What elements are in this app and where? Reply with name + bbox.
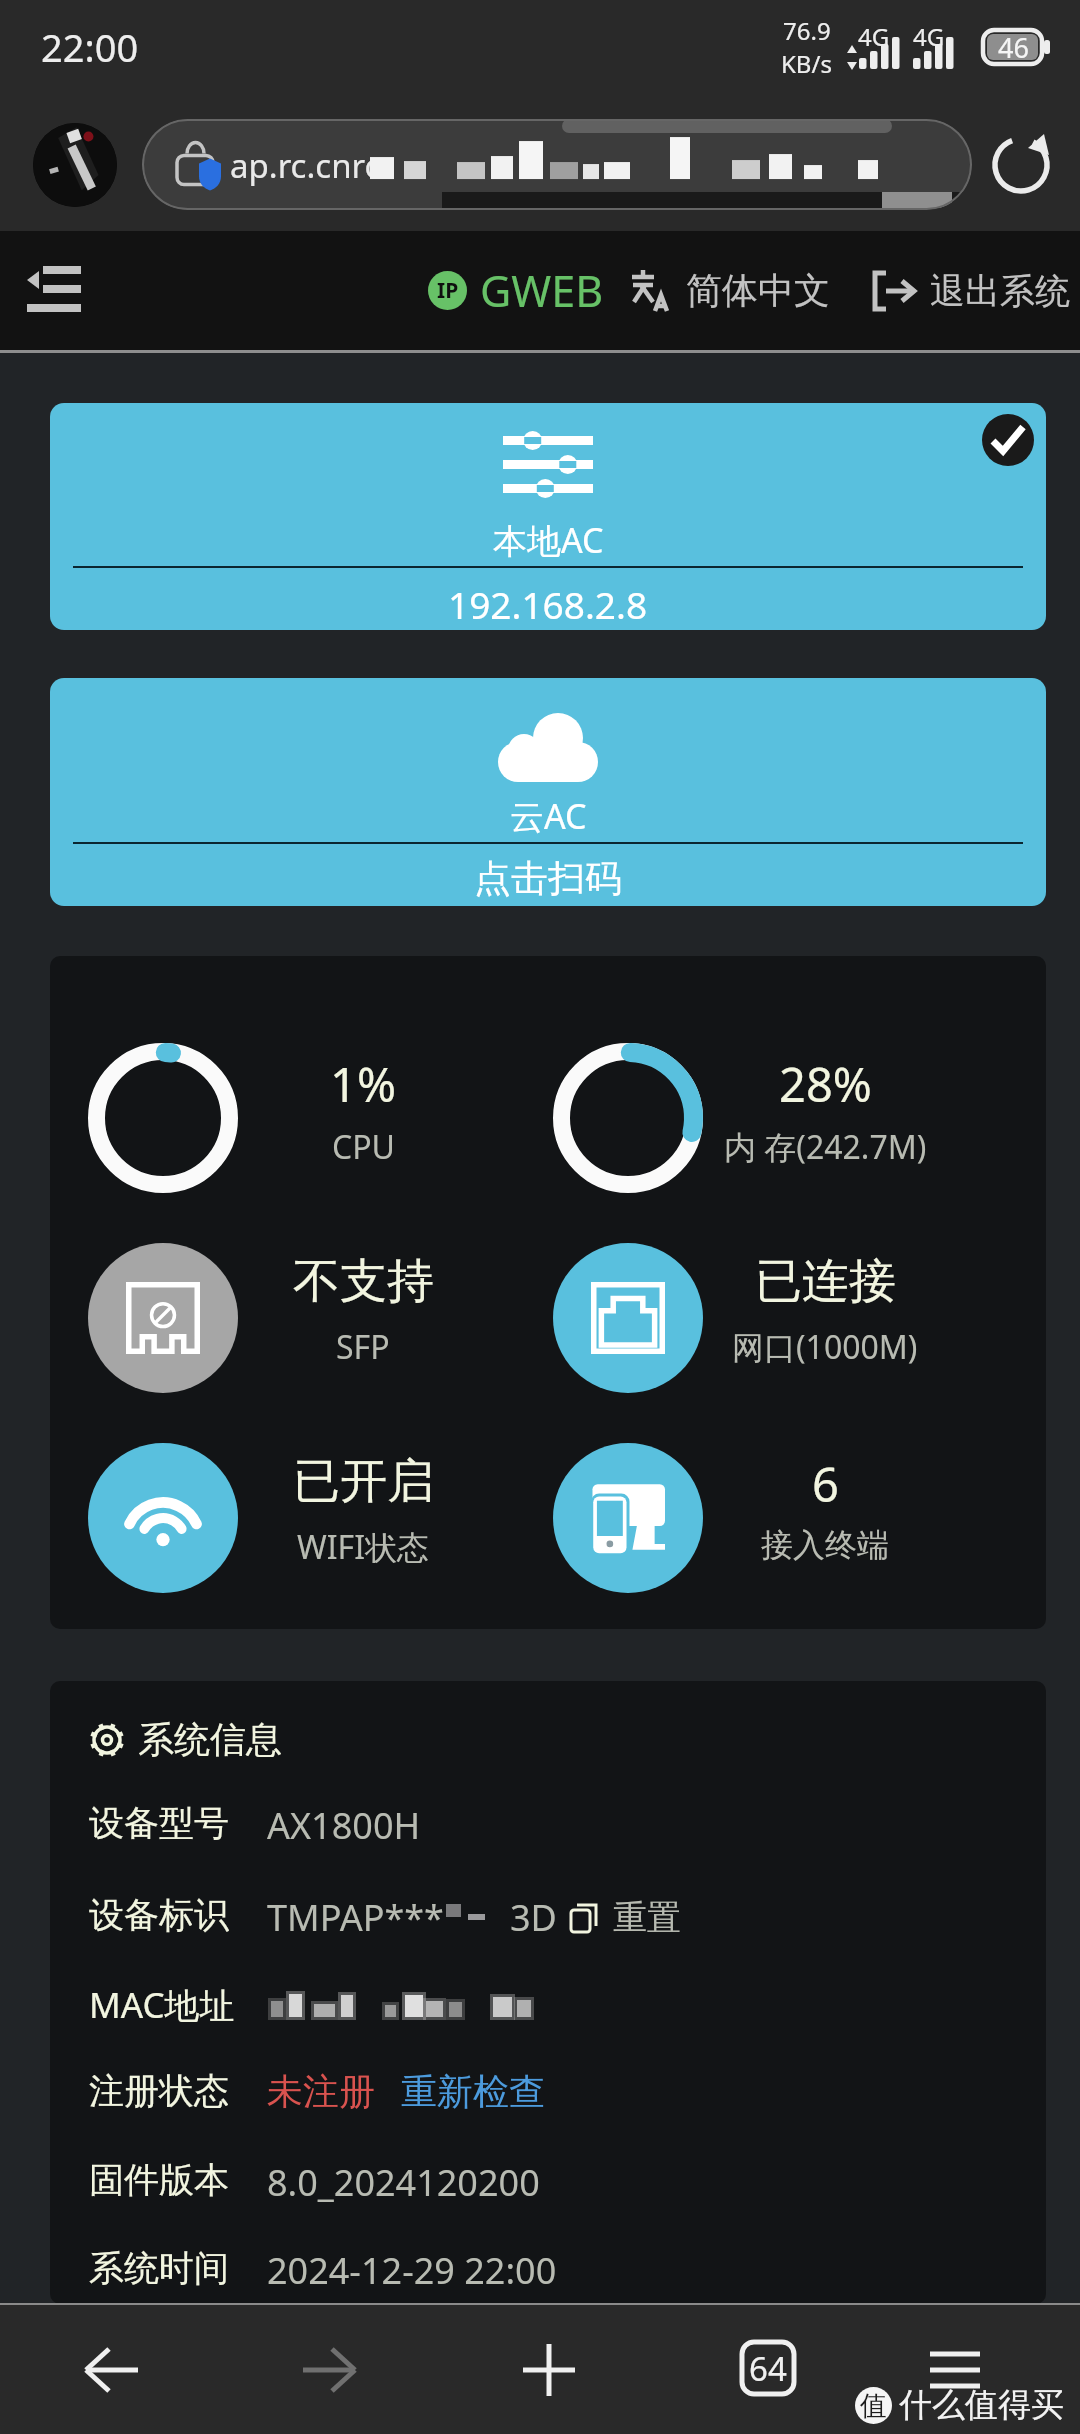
staticText: MAC地址 (89, 1981, 235, 2029)
staticText: CPU (332, 1125, 395, 1169)
staticText: 简体中文 (686, 268, 830, 313)
staticText: 28% (779, 1052, 872, 1116)
button[interactable]: 接入终端 (553, 1443, 703, 1593)
staticText: 4G (913, 20, 945, 53)
staticText: 值 (860, 2389, 887, 2423)
button[interactable]: New tab (509, 2328, 589, 2408)
staticText: 22:00 (41, 21, 139, 73)
staticText: 192.168.2.8 (448, 579, 648, 629)
button[interactable]: WIFI (88, 1443, 238, 1593)
staticText: TMPAP*** (267, 1893, 444, 1942)
staticText: 注册状态 (89, 2069, 229, 2113)
staticText: ap.rc.cnro (230, 143, 385, 188)
staticText: WIFI状态 (297, 1525, 430, 1569)
staticText: 不支持 (293, 1252, 434, 1311)
staticText: IP (437, 276, 459, 305)
staticText: 接入终端 (761, 1525, 889, 1565)
button[interactable]: Tabs (738, 2338, 798, 2398)
button[interactable]: ap.rc.cnro (142, 119, 972, 210)
button[interactable]: 本地AC (50, 403, 1046, 630)
staticText: 重置 (613, 1896, 681, 1939)
button[interactable]: Reload (978, 122, 1064, 208)
staticText: 4G (858, 20, 890, 53)
staticText: GWEB (480, 261, 604, 320)
staticText: 本地AC (493, 517, 604, 563)
staticText: 网口(1000M) (732, 1325, 918, 1369)
staticText: 云AC (510, 793, 587, 839)
staticText: 系统信息 (138, 1717, 282, 1762)
button[interactable]: 网口 (553, 1243, 703, 1393)
button[interactable]: 重置 (613, 1896, 681, 1939)
staticText: 内 存(242.7M) (724, 1125, 927, 1169)
button[interactable]: 云AC (50, 678, 1046, 906)
staticText: 6 (812, 1452, 839, 1516)
staticText: 固件版本 (89, 2158, 229, 2202)
button[interactable]: Forward (289, 2328, 369, 2408)
staticText: 设备标识 (89, 1893, 229, 1937)
staticText: 46 (998, 29, 1029, 66)
staticText: 系统时间 (89, 2246, 229, 2290)
staticText: 未注册 (267, 2069, 375, 2114)
staticText: 退出系统 (930, 269, 1070, 313)
button[interactable]: Profile (33, 123, 117, 207)
staticText: 已连接 (755, 1252, 896, 1311)
staticText: KB/s (781, 47, 832, 80)
staticText: 8.0_2024120200 (267, 2158, 540, 2207)
staticText: 重新检查 (401, 2069, 545, 2114)
button[interactable]: 简体中文 (628, 268, 878, 313)
staticText: SFP (336, 1325, 390, 1369)
button[interactable]: 重新检查 (401, 2069, 545, 2114)
button[interactable]: 退出系统 (872, 269, 1080, 313)
staticText: 64 (749, 2346, 787, 2391)
button[interactable]: Menu (915, 2328, 995, 2408)
button[interactable]: Toggle menu (22, 260, 84, 322)
staticText: 76.9 (783, 14, 831, 47)
staticText: 已开启 (293, 1452, 434, 1511)
staticText: 设备型号 (89, 1801, 229, 1845)
button[interactable]: SFP (88, 1243, 238, 1393)
staticText: 点击扫码 (474, 855, 622, 902)
button[interactable]: IP (428, 261, 604, 320)
staticText: AX1800H (267, 1801, 421, 1850)
button[interactable]: Copy (569, 1897, 603, 1939)
button[interactable]: Back (72, 2328, 152, 2408)
staticText: 3D (510, 1893, 557, 1942)
staticText: 1% (330, 1052, 396, 1116)
staticText: 2024-12-29 22:00 (267, 2246, 557, 2295)
staticText: 什么值得买 (899, 2384, 1064, 2426)
